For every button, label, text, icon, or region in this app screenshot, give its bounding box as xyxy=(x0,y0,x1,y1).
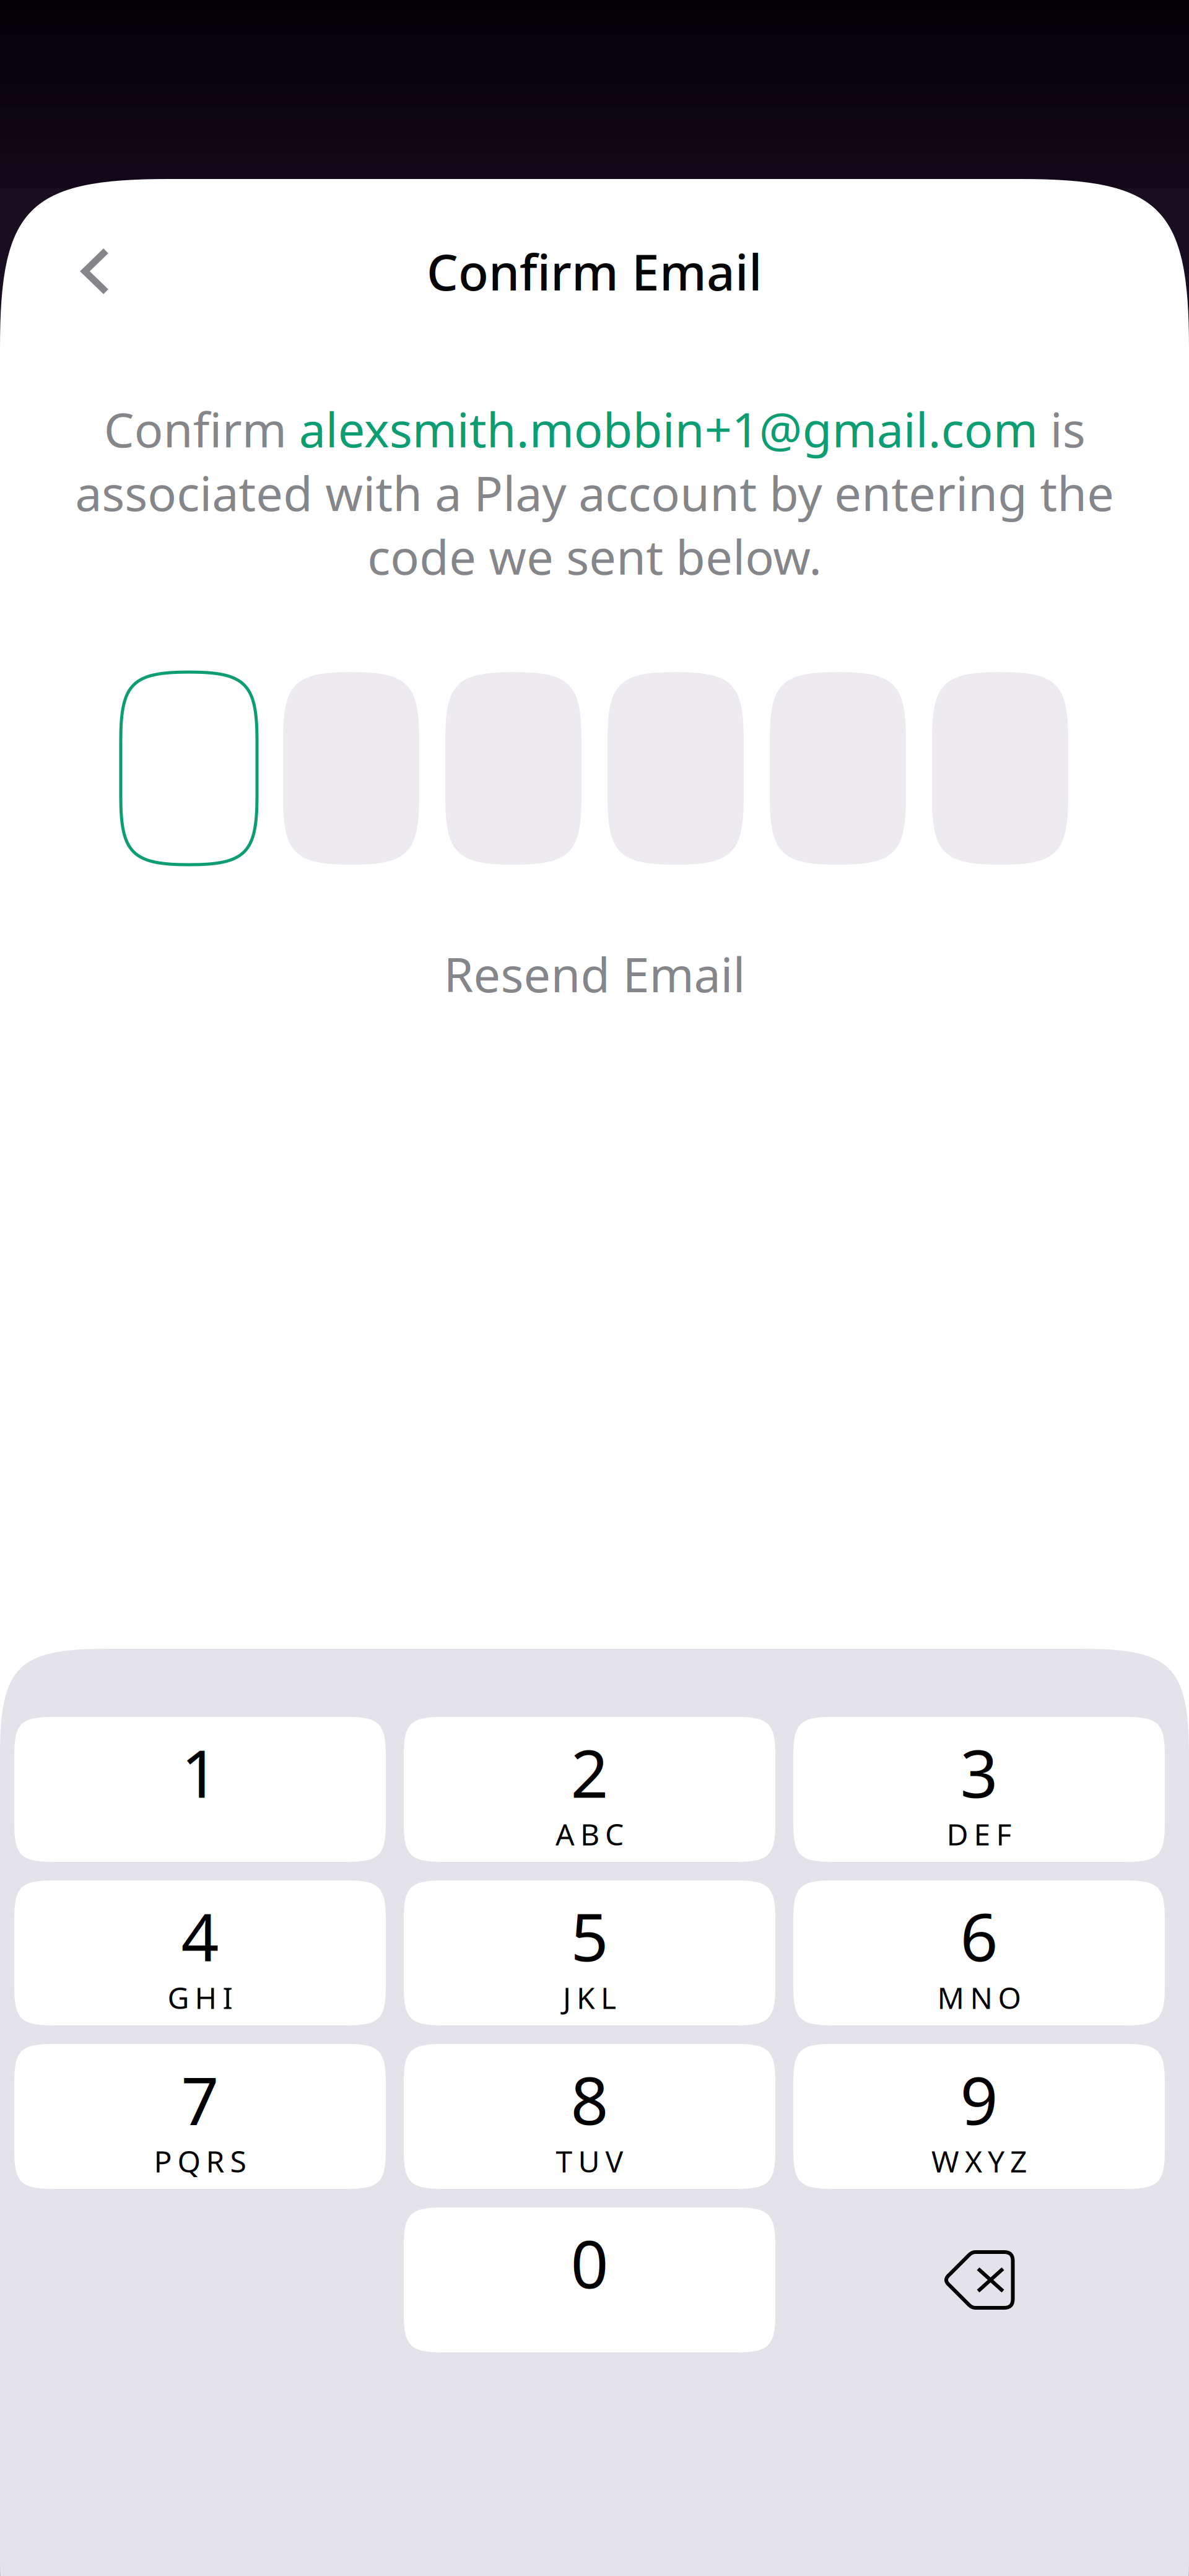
staticText: 2 xyxy=(571,1728,608,1816)
button[interactable]: 3 xyxy=(793,1717,1165,1862)
button[interactable]: Back xyxy=(46,222,145,321)
button[interactable]: Code digit 5 xyxy=(770,672,906,865)
button[interactable]: 0 xyxy=(404,2207,775,2352)
button[interactable]: Code digit 6 xyxy=(932,672,1068,865)
staticText: MNO xyxy=(937,1978,1021,2017)
button[interactable]: 8 xyxy=(404,2044,775,2189)
button[interactable]: Delete xyxy=(793,2207,1165,2352)
button[interactable]: 5 xyxy=(404,1880,775,2025)
button[interactable]: 2 xyxy=(404,1717,775,1862)
staticText: WXYZ xyxy=(931,2141,1027,2181)
staticText: Confirm alexsmith.mobbin+1@gmail.com is … xyxy=(75,397,1114,588)
staticText: DEF xyxy=(947,1814,1012,1854)
button[interactable]: Code digit 3 xyxy=(445,672,581,865)
staticText: JKL xyxy=(563,1978,616,2017)
staticText: PQRS xyxy=(154,2141,246,2181)
button[interactable]: 4 xyxy=(14,1880,386,2025)
button[interactable]: Code digit 4 xyxy=(608,672,744,865)
staticText: Confirm Email xyxy=(427,238,762,304)
button[interactable]: 1 xyxy=(14,1717,386,1862)
staticText: 9 xyxy=(960,2055,998,2143)
button[interactable]: 6 xyxy=(793,1880,1165,2025)
button[interactable]: Resend Email xyxy=(0,930,1189,1017)
button[interactable]: 9 xyxy=(793,2044,1165,2189)
staticText: 3 xyxy=(960,1728,998,1816)
button[interactable]: Code digit 1 xyxy=(121,672,257,865)
staticText: 8 xyxy=(571,2055,608,2143)
staticText: 4 xyxy=(181,1892,219,1979)
staticText: 5 xyxy=(571,1892,608,1979)
staticText: GHI xyxy=(168,1978,233,2017)
staticText: 1 xyxy=(181,1728,219,1816)
button[interactable]: 7 xyxy=(14,2044,386,2189)
button[interactable]: Code digit 2 xyxy=(283,672,419,865)
staticText: Resend Email xyxy=(444,942,745,1006)
staticText: TUV xyxy=(556,2141,623,2181)
staticText: 6 xyxy=(960,1892,998,1979)
staticText: 0 xyxy=(571,2219,608,2306)
staticText: 7 xyxy=(181,2055,219,2143)
staticText: ABC xyxy=(555,1814,624,1854)
